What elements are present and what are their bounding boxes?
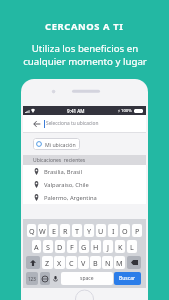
button[interactable]: I — [108, 224, 118, 237]
staticText: K — [118, 242, 123, 252]
staticText: 100% — [121, 108, 132, 114]
staticText: N — [105, 258, 111, 268]
staticText: H — [93, 242, 99, 252]
button[interactable]: R — [60, 224, 70, 237]
button[interactable]: space — [61, 272, 113, 285]
staticText: V — [81, 258, 86, 268]
staticText: R — [63, 226, 68, 236]
button[interactable]: P — [132, 224, 142, 237]
button[interactable]: C — [66, 256, 77, 269]
button[interactable]: H — [91, 240, 101, 253]
staticText: Y — [87, 226, 92, 236]
button[interactable]: Y — [84, 224, 94, 237]
button[interactable]: Dictate — [52, 272, 59, 285]
staticText: 123 — [28, 276, 36, 282]
staticText: Valparaiso, Chile — [44, 181, 89, 189]
button[interactable]: Backspace — [127, 256, 141, 269]
button[interactable]: Shift — [26, 256, 40, 269]
staticText: O — [122, 226, 128, 236]
staticText: J — [107, 242, 109, 252]
staticText: C — [69, 258, 74, 268]
staticText: F — [70, 242, 74, 252]
staticText: Utiliza los beneficios en cualquier mome… — [23, 42, 147, 68]
staticText: 9:41 AM — [67, 108, 85, 114]
button[interactable]: Q — [27, 224, 36, 237]
button[interactable]: Buscar — [114, 272, 141, 285]
button[interactable]: Z — [42, 256, 53, 269]
staticText: CERCANOS A TI — [45, 20, 124, 33]
button[interactable]: X — [54, 256, 65, 269]
button[interactable]: M — [114, 256, 125, 269]
staticText: P — [135, 226, 140, 236]
staticText: Q — [29, 226, 35, 236]
staticText: Brasilia, Brasil — [44, 168, 82, 176]
button[interactable]: W — [38, 224, 47, 237]
button[interactable]: U — [96, 224, 106, 237]
button[interactable]: Valparaiso, Chile — [23, 178, 146, 191]
staticText: Ubicaciones recientes — [33, 157, 86, 164]
staticText: G — [81, 242, 87, 252]
button[interactable]: V — [78, 256, 89, 269]
staticText: W — [39, 226, 46, 236]
staticText: Palermo, Argentina — [44, 194, 97, 202]
button[interactable]: F — [67, 240, 77, 253]
button[interactable]: Palermo, Argentina — [23, 191, 146, 204]
button[interactable]: A — [32, 240, 41, 253]
staticText: S — [46, 242, 50, 252]
button[interactable]: S — [43, 240, 53, 253]
staticText: Z — [45, 258, 50, 268]
staticText: D — [57, 242, 63, 252]
button[interactable]: T — [72, 224, 82, 237]
button[interactable]: Emoji — [40, 272, 50, 285]
button[interactable]: Mi ubicación — [33, 138, 80, 150]
button[interactable]: 123 — [26, 272, 38, 285]
staticText: M — [116, 258, 123, 268]
staticText: B — [93, 258, 98, 268]
button[interactable]: D — [55, 240, 65, 253]
button[interactable]: B — [90, 256, 101, 269]
staticText: space — [80, 275, 94, 282]
staticText: L — [130, 242, 134, 252]
staticText: U — [98, 226, 104, 236]
staticText: E — [52, 226, 56, 236]
button[interactable]: N — [102, 256, 113, 269]
staticText: A — [34, 242, 39, 252]
button[interactable]: K — [115, 240, 125, 253]
staticText: Buscar — [119, 275, 136, 282]
staticText: X — [57, 258, 62, 268]
staticText: Selecciona tu ubicacion — [46, 120, 99, 127]
staticText: I — [112, 226, 115, 236]
staticText: Mi ubicación — [45, 141, 76, 148]
button[interactable]: O — [120, 224, 130, 237]
button[interactable]: G — [79, 240, 89, 253]
button[interactable]: Brasilia, Brasil — [23, 165, 146, 178]
button[interactable]: L — [127, 240, 137, 253]
button[interactable]: Back — [33, 115, 146, 132]
other: Back — [33, 120, 41, 128]
button[interactable]: E — [49, 224, 58, 237]
button[interactable]: J — [103, 240, 113, 253]
staticText: T — [75, 226, 79, 236]
